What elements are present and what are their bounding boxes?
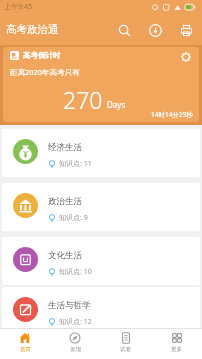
staticText: 上午9:45 — [4, 2, 32, 12]
staticText: 距离2020年高考只有 — [10, 67, 80, 77]
staticText: 知识点: 10 — [59, 267, 92, 277]
staticText: 知识点: 12 — [59, 317, 92, 327]
staticText: 试卷 — [120, 346, 131, 353]
staticText: 高考政治通 — [6, 23, 59, 36]
staticText: 270 — [63, 84, 103, 115]
staticText: 文化生活 — [48, 250, 82, 261]
staticText: Days — [107, 99, 126, 110]
button[interactable] — [145, 20, 165, 40]
staticText: 高考倒计时 — [23, 51, 61, 60]
staticText: 经济生活 — [48, 142, 82, 153]
staticText: 更多 — [171, 346, 182, 353]
staticText: 政治生活 — [48, 196, 82, 207]
button[interactable]: 文化生活 — [2, 237, 200, 285]
button[interactable]: 经济生活 — [2, 129, 200, 177]
button[interactable]: 生活与哲学 — [2, 287, 200, 335]
button[interactable] — [176, 20, 196, 40]
staticText: 发现 — [70, 346, 81, 353]
button[interactable] — [114, 20, 134, 40]
button[interactable] — [179, 50, 193, 64]
staticText: 知识点: 9 — [59, 213, 88, 223]
button[interactable]: 首页 — [0, 329, 50, 359]
staticText: 生活与哲学 — [48, 300, 91, 311]
button[interactable]: 发现 — [50, 329, 100, 359]
staticText: 14时14分29秒 — [151, 110, 193, 119]
staticText: 首页 — [20, 346, 31, 353]
button[interactable]: 政治生活 — [2, 183, 200, 231]
button[interactable]: 高考倒计时 — [3, 47, 199, 122]
button[interactable]: 试卷 — [100, 329, 151, 359]
button[interactable]: 更多 — [151, 329, 202, 359]
staticText: 知识点: 11 — [59, 159, 92, 169]
